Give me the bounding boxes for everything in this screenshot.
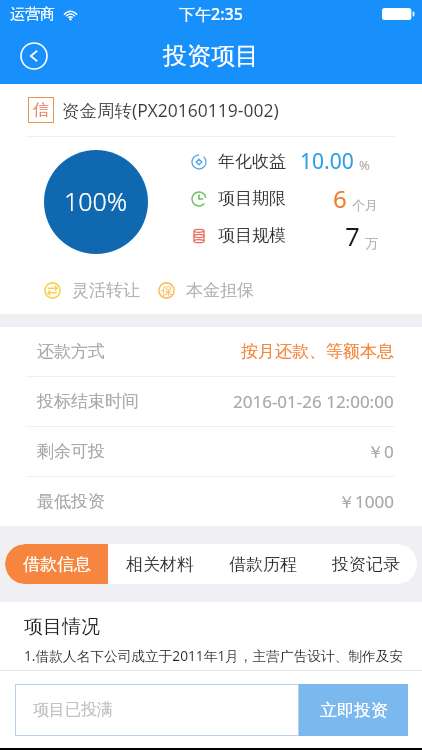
- staticText: 投标结束时间: [37, 391, 139, 412]
- staticText: 信: [33, 100, 49, 120]
- staticText: 项目规模: [218, 225, 286, 246]
- staticText: 还款方式: [37, 341, 105, 362]
- button[interactable]: 立即投资: [299, 684, 408, 736]
- staticText: 本金担保: [186, 280, 254, 301]
- button[interactable]: 灵活转让: [44, 280, 140, 301]
- staticText: 个月: [352, 197, 378, 213]
- button[interactable]: 相关材料: [108, 544, 211, 584]
- staticText: 1.借款人名下公司成立于2011年1月，主营广告设计、制作及安: [24, 646, 404, 665]
- staticText: 借款历程: [229, 554, 297, 575]
- staticText: 年化收益: [218, 151, 286, 172]
- button[interactable]: 借款历程: [211, 544, 314, 584]
- staticText: 下午2:35: [179, 3, 243, 25]
- staticText: ￥1000: [338, 490, 394, 513]
- staticText: 2016-01-26 12:00:00: [233, 390, 394, 413]
- staticText: 投资记录: [332, 554, 400, 575]
- button[interactable]: 项目已投满: [15, 684, 299, 736]
- staticText: 6: [333, 182, 347, 215]
- staticText: 10.00: [300, 147, 354, 176]
- staticText: 按月还款、等额本息: [241, 341, 394, 362]
- button[interactable]: Back: [20, 42, 48, 70]
- staticText: 项目情况: [24, 615, 100, 639]
- button[interactable]: 投标结束时间: [0, 377, 422, 426]
- staticText: 相关材料: [126, 554, 194, 575]
- staticText: 灵活转让: [72, 280, 140, 301]
- staticText: 项目期限: [218, 188, 286, 209]
- staticText: 剩余可投: [37, 441, 105, 462]
- button[interactable]: 最低投资: [0, 477, 422, 526]
- staticText: 最低投资: [37, 491, 105, 512]
- staticText: 投资项目: [163, 41, 259, 71]
- button[interactable]: 投资记录: [314, 544, 417, 584]
- button[interactable]: 剩余可投: [0, 427, 422, 476]
- button[interactable]: 借款信息: [5, 544, 108, 584]
- staticText: 借款信息: [23, 554, 91, 575]
- staticText: ￥0: [367, 440, 394, 463]
- staticText: 100%: [64, 184, 128, 218]
- staticText: %: [359, 156, 370, 174]
- staticText: 保: [161, 284, 172, 298]
- staticText: 资金周转(PX20160119-002): [62, 98, 279, 122]
- staticText: 立即投资: [320, 700, 388, 721]
- button[interactable]: 保: [158, 280, 254, 301]
- button[interactable]: 还款方式: [0, 327, 422, 376]
- staticText: 7: [345, 218, 360, 253]
- staticText: 运营商: [10, 5, 55, 24]
- staticText: 项目已投满: [33, 700, 113, 720]
- staticText: 万: [365, 235, 378, 251]
